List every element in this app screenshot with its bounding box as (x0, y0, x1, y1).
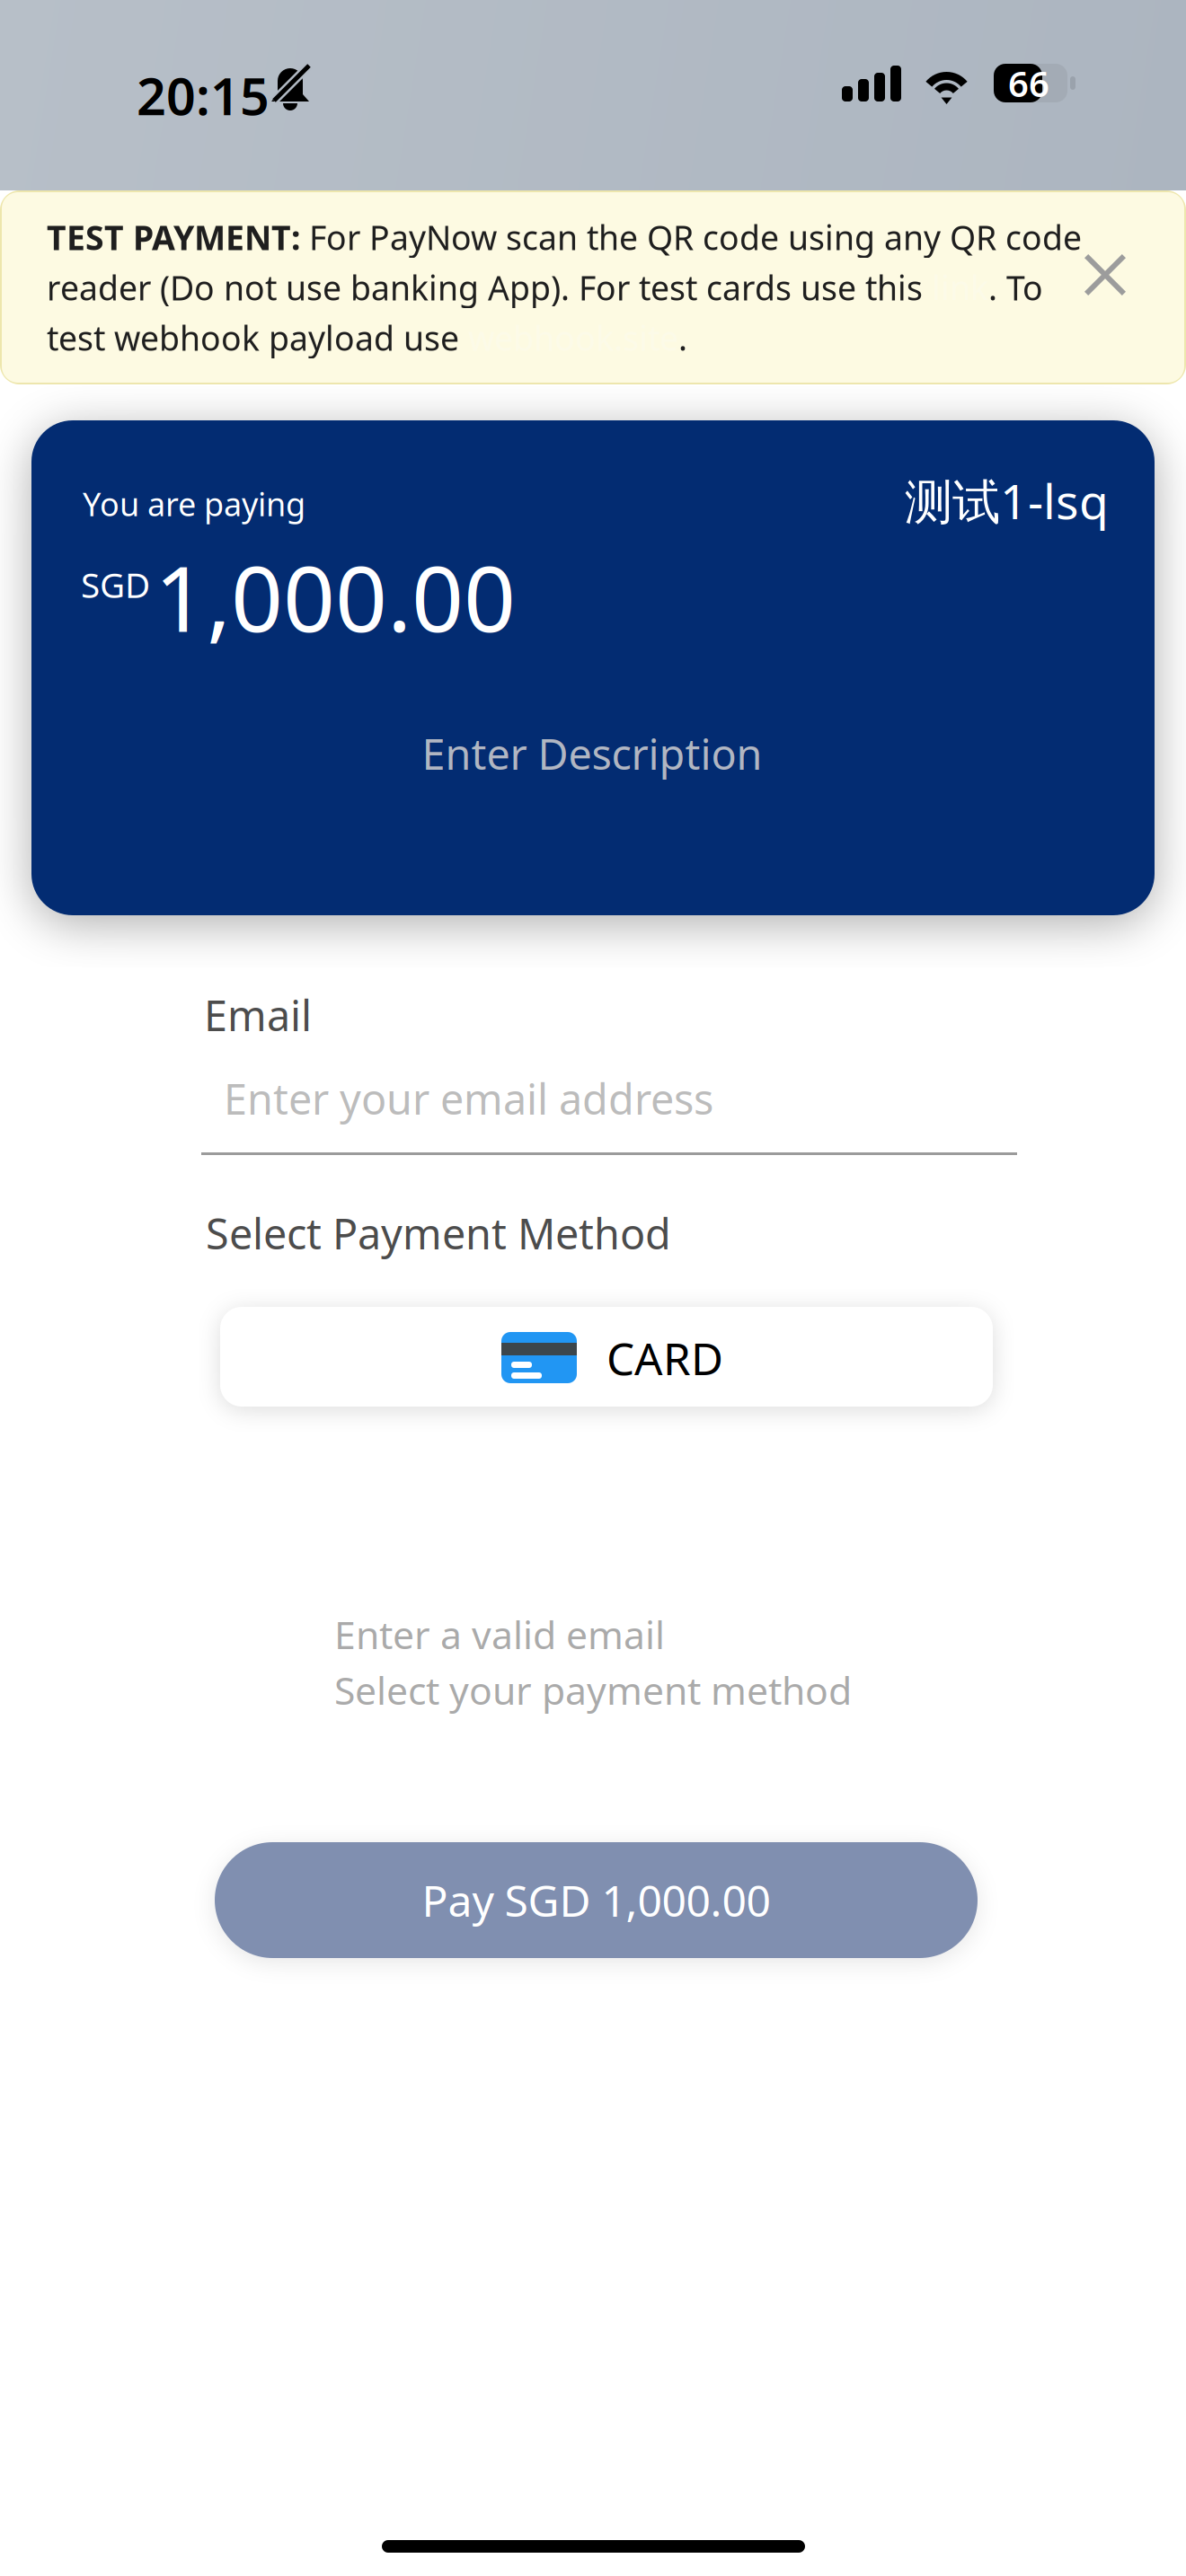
button[interactable]: Close (1056, 225, 1155, 324)
staticText: CARD (606, 1328, 723, 1387)
staticText: Enter Description (422, 726, 762, 781)
staticText: reader (Do not use banking App). For tes… (47, 265, 932, 310)
staticText: Enter your email address (224, 1071, 713, 1126)
staticText: 测试1-lsq (905, 469, 1109, 532)
staticText: For PayNow scan the QR code using any QR… (300, 215, 1082, 259)
staticText: test webhook payload use (47, 315, 468, 360)
staticText: Enter a valid email (334, 1609, 665, 1660)
staticText: TEST PAYMENT: (47, 215, 300, 259)
staticText: Pay SGD 1,000.00 (422, 1871, 770, 1929)
staticText: 20:15 (137, 61, 270, 129)
staticText: Select Payment Method (206, 1205, 671, 1261)
staticText: Select your payment method (334, 1664, 852, 1715)
button[interactable]: CARD (220, 1307, 993, 1407)
staticText: . To (988, 265, 1043, 310)
staticText: . (678, 315, 687, 360)
staticText: 66 (1008, 59, 1049, 107)
staticText: 1,000.00 (155, 536, 516, 657)
staticText: You are paying (83, 482, 305, 525)
staticText: SGD (81, 561, 150, 607)
staticText: Email (204, 987, 312, 1043)
button[interactable]: Pay SGD 1,000.00 (215, 1842, 978, 1958)
